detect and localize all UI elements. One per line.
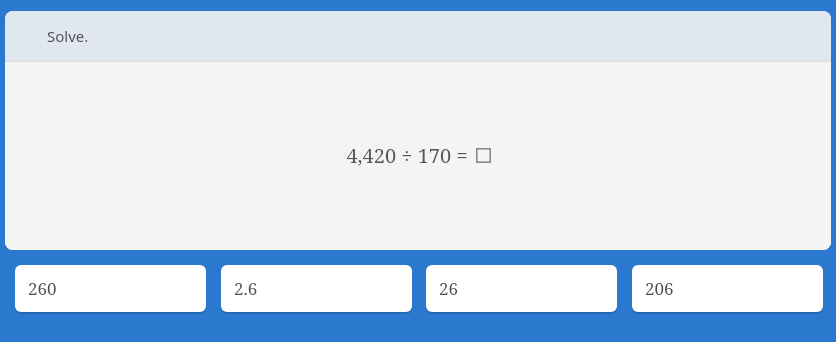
- staticText: Solve.: [47, 26, 89, 46]
- staticText: 4,420 ÷ 170 =: [346, 142, 468, 169]
- staticText: 2.6: [234, 277, 258, 300]
- button[interactable]: 206: [632, 265, 823, 312]
- staticText: 206: [645, 277, 674, 300]
- button[interactable]: 26: [426, 265, 617, 312]
- staticText: 26: [439, 277, 459, 300]
- button[interactable]: 260: [15, 265, 206, 312]
- staticText: 260: [28, 277, 57, 300]
- button[interactable]: 2.6: [221, 265, 412, 312]
